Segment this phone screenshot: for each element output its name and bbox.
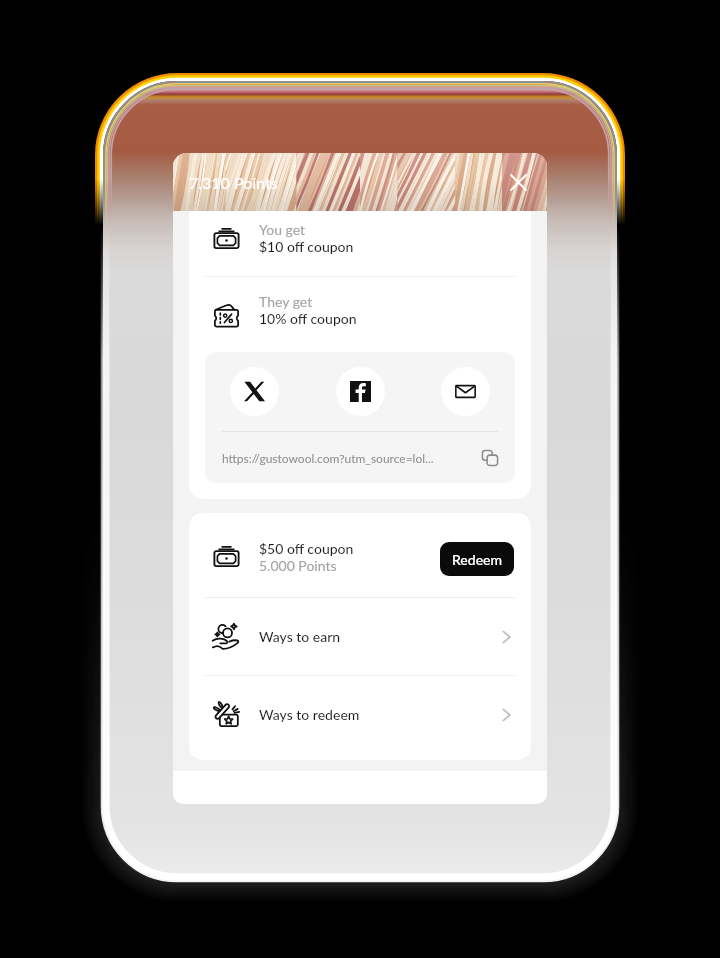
button[interactable]: You get [189,211,531,269]
button[interactable]: Ways to redeem [189,676,531,753]
button[interactable]: Share on X [230,367,279,416]
button[interactable]: Share by email [441,367,490,416]
staticText: Redeem [452,551,503,568]
staticText: 10% off coupon [259,310,357,327]
button[interactable]: Close [503,167,533,197]
staticText: They get [259,293,313,310]
staticText: Ways to earn [259,628,341,645]
staticText: $50 off coupon [259,540,354,557]
button[interactable]: https://gustowool.com?utm_source=lol... [205,432,515,483]
button[interactable]: They get [189,283,531,341]
other: Copy link [481,449,499,467]
button[interactable]: Share on Facebook [336,367,385,416]
staticText: 5.000 Points [259,557,337,574]
staticText: 7.310 Points [189,173,278,192]
button[interactable]: Ways to earn [189,598,531,675]
staticText: Ways to redeem [259,706,360,723]
button[interactable]: Redeem [440,542,514,576]
staticText: You get [259,221,306,238]
staticText: $10 off coupon [259,238,354,255]
button[interactable]: $50 off coupon [189,520,531,597]
staticText: https://gustowool.com?utm_source=lol... [222,451,434,465]
